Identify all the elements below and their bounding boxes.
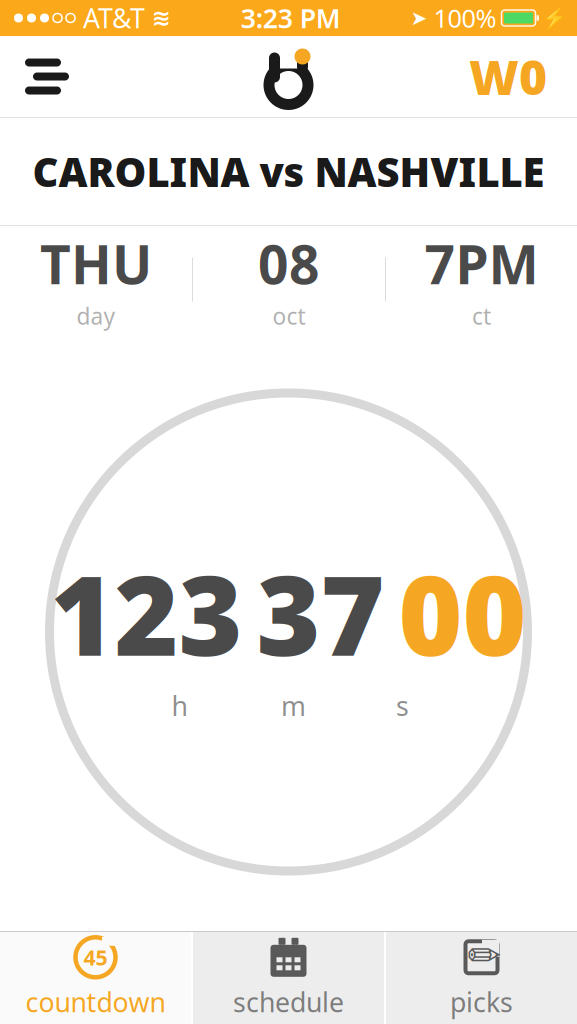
staticText: 7PM [424,228,538,299]
staticText: 00 [398,541,526,686]
staticText: ≋ [152,5,171,31]
staticText: oct [272,301,305,331]
button[interactable]: 45 [0,932,191,1024]
staticText: 37 [256,541,384,686]
staticText: 3:23 PM [241,0,341,36]
staticText: 08 [258,228,320,299]
staticText: countdown [25,984,165,1020]
staticText: day [76,301,115,331]
staticText: ct [472,301,491,331]
staticText: CAROLINA vs NASHVILLE [32,145,544,198]
staticText: THU [40,228,152,299]
staticText: 123 [50,541,242,686]
button[interactable]: Menu [18,46,76,106]
button[interactable]: schedule [193,932,384,1024]
staticText: W0 [469,45,547,108]
button[interactable]: ✏ [386,932,577,1024]
staticText: picks [450,984,513,1020]
staticText: AT&T [83,0,145,36]
staticText: ➤ [410,7,427,29]
staticText: ✏ [467,933,501,978]
staticText: schedule [233,984,344,1020]
staticText: 100% [433,1,496,35]
staticText: 45 [83,943,107,971]
button[interactable]: W0 [461,46,555,106]
staticText: s [396,688,409,723]
staticText: m [281,688,306,723]
staticText: h [171,688,187,723]
staticText: ⚡ [542,7,567,29]
